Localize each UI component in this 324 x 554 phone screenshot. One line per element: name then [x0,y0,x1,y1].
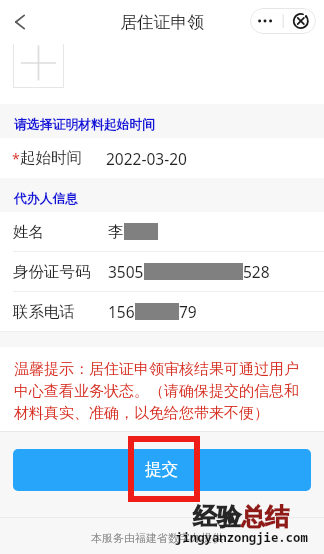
button[interactable]: 身份证号码 [0,252,324,291]
staticText: 居住证申领 [120,12,204,33]
staticText: 李 [108,222,124,242]
button[interactable]: 提交 [13,449,311,491]
staticText: 提交 [145,459,179,480]
staticText: 本服务由福建省数字办提供 [91,531,223,545]
staticText: 2022-03-20 [106,148,187,169]
staticText: 3505 [108,261,144,282]
staticText: 79 [179,301,197,322]
button[interactable]: 姓名 [0,212,324,251]
staticText: 姓名 [13,222,44,242]
staticText: 代办人信息 [14,191,78,207]
staticText: * [12,149,20,168]
staticText: 156 [108,301,135,322]
button[interactable]: 联系电话 [0,292,324,331]
button[interactable]: Back [6,8,34,36]
staticText: 起始时间 [20,148,82,168]
button[interactable]: Add photo [13,44,64,88]
staticText: 身份证号码 [13,262,91,282]
staticText: 总结 [241,502,289,532]
staticText: 经验 [193,502,241,532]
button[interactable]: * [0,138,324,178]
staticText: jingyanzongjie.com [175,529,308,546]
staticText: 温馨提示：居住证申领审核结果可通过用户中心查看业务状态。（请确保提交的信息和材料… [14,360,301,423]
staticText: 请选择证明材料起始时间 [14,117,155,133]
staticText: 528 [243,261,270,282]
staticText: 联系电话 [13,302,75,322]
